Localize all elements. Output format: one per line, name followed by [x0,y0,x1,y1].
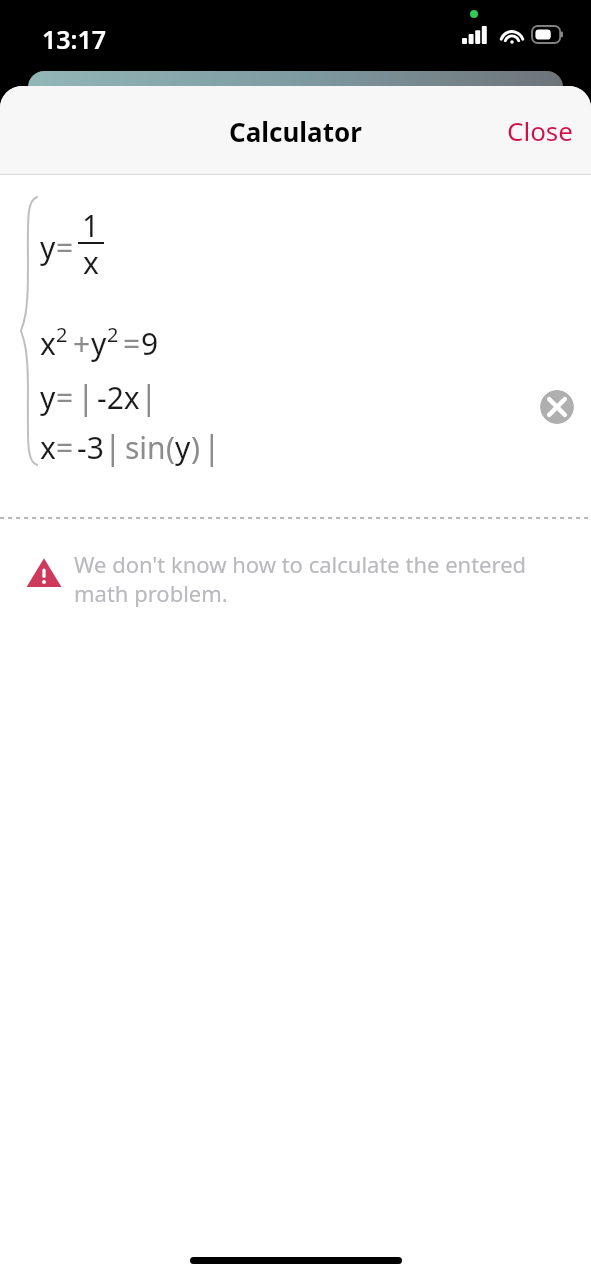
staticText: 1 [82,205,100,246]
staticText: 2 [56,321,68,348]
staticText: We don't know how to calculate the enter… [74,549,551,608]
staticText: ) [191,427,200,468]
button[interactable]: Clear [540,390,574,424]
staticText: | [140,375,158,419]
staticText: y [40,227,56,268]
staticText: | [203,425,221,469]
staticText: 13:17 [42,22,107,56]
staticText: x [40,427,56,468]
staticText: 9 [141,323,159,364]
staticText: -2x [97,377,140,418]
staticText: -3 [77,427,104,468]
staticText: Close [507,113,573,148]
staticText: ( [166,427,175,468]
staticText: 2 [107,321,119,348]
staticText: Calculator [229,114,362,149]
staticText: = [56,377,74,418]
staticText: = [123,323,141,364]
staticText: = [56,427,74,468]
staticText: x [83,242,99,283]
staticText: y [40,377,56,418]
staticText: | [77,375,95,419]
staticText: | [104,425,122,469]
staticText: x [40,323,56,364]
staticText: + [73,323,91,364]
staticText: y [175,427,191,468]
staticText: sin [125,427,166,468]
button[interactable]: Close [489,99,591,162]
staticText: = [56,227,74,268]
staticText: y [91,323,107,364]
